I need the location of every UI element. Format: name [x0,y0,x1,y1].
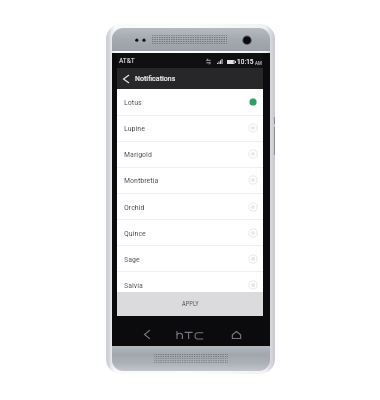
button[interactable]: APPLY [117,292,263,316]
button[interactable]: Marigold [117,141,263,167]
button[interactable]: Navigate up [117,68,263,89]
button[interactable]: Montbretia [117,167,263,193]
staticText: Salvia [124,281,258,290]
button[interactable]: Quince [117,220,263,246]
button[interactable]: Salvia [117,272,263,292]
staticText: AM [255,60,262,66]
staticText: Notifications [135,74,176,83]
staticText: Marigold [124,150,258,159]
staticText: Lupine [124,124,258,133]
staticText: Lotus [124,98,258,107]
button[interactable]: Sage [117,246,263,272]
staticText: Sage [124,255,258,264]
staticText: Quince [124,229,258,238]
button[interactable]: Back [138,316,156,345]
button[interactable]: Orchid [117,194,263,220]
staticText: APPLY [182,300,199,308]
staticText: AT&T [119,56,135,65]
staticText: Orchid [124,203,258,212]
button[interactable]: Home [227,316,245,345]
other: Navigate up [117,68,134,89]
staticText: 10:15 [237,57,254,66]
button[interactable]: Lotus [117,89,263,115]
staticText: Montbretia [124,176,258,185]
button[interactable]: Lupine [117,115,263,141]
